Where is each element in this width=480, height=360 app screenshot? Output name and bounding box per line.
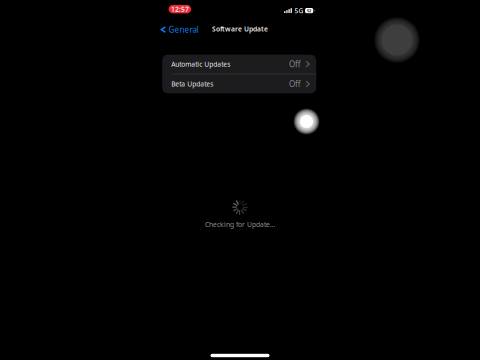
- staticText: 52: [307, 8, 311, 13]
- staticText: Beta Updates: [171, 79, 213, 88]
- staticText: 5G: [294, 6, 303, 15]
- staticText: Off: [289, 59, 301, 69]
- staticText: Checking for Update…: [205, 220, 275, 229]
- staticText: Automatic Updates: [171, 60, 230, 68]
- button[interactable]: Beta Updates: [162, 74, 316, 94]
- staticText: 12:57: [171, 5, 189, 14]
- staticText: Software Update: [212, 25, 268, 33]
- button[interactable]: Automatic Updates: [162, 54, 316, 74]
- button[interactable]: Back to General: [154, 22, 202, 38]
- staticText: Off: [289, 79, 301, 89]
- staticText: General: [168, 24, 198, 35]
